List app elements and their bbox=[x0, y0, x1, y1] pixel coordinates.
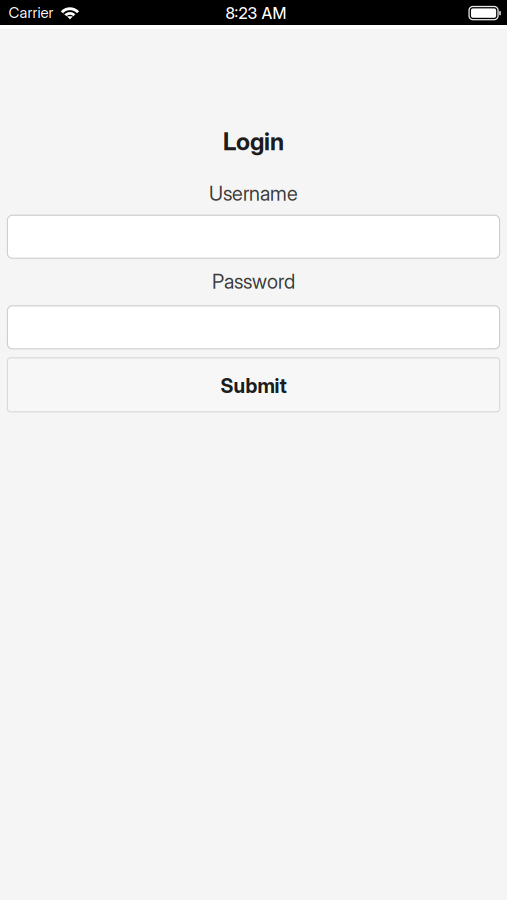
staticText: Password bbox=[212, 269, 295, 293]
staticText: Carrier bbox=[8, 3, 53, 22]
button[interactable]: Username bbox=[7, 215, 500, 258]
staticText: Login bbox=[223, 127, 284, 156]
staticText: Submit bbox=[220, 374, 286, 398]
button[interactable]: Password bbox=[7, 306, 500, 349]
staticText: 8:23 AM bbox=[225, 4, 286, 23]
button[interactable]: Submit bbox=[7, 358, 500, 412]
staticText: Username bbox=[209, 182, 298, 206]
